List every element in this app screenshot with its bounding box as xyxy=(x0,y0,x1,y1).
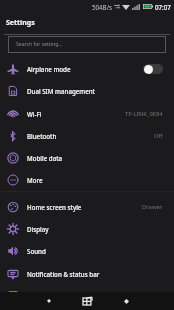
button[interactable]: Sound xyxy=(0,240,174,262)
staticText: Home screen style xyxy=(27,203,82,211)
staticText: Drawer xyxy=(142,203,163,211)
staticText: Search for setting... xyxy=(16,41,63,48)
button[interactable]: Airplane mode xyxy=(0,58,174,80)
button[interactable]: Home screen style xyxy=(0,196,174,218)
staticText: Dual SIM management xyxy=(27,87,95,95)
staticText: Airplane mode xyxy=(27,65,71,73)
staticText: Bluetooth xyxy=(27,132,57,140)
staticText: Sound xyxy=(27,247,46,255)
staticText: More xyxy=(27,176,43,184)
staticText: 504B/s xyxy=(92,3,112,11)
staticText: Mobile data xyxy=(27,154,63,162)
button[interactable]: Dual SIM management xyxy=(0,80,174,102)
button[interactable]: More xyxy=(0,169,174,191)
button[interactable]: Home xyxy=(107,292,145,310)
button[interactable]: Back xyxy=(29,292,68,310)
staticText: Notification & status bar xyxy=(27,270,100,278)
staticText: Lock screen xyxy=(27,292,62,300)
staticText: 07:07 xyxy=(155,3,171,11)
staticText: Display xyxy=(27,225,49,233)
staticText: Settings xyxy=(6,18,35,28)
button[interactable]: Notification & status bar xyxy=(0,263,174,285)
button[interactable]: Display xyxy=(0,218,174,240)
button[interactable]: Search for setting... xyxy=(8,36,166,53)
button[interactable]: Mobile data xyxy=(0,147,174,169)
staticText: Off xyxy=(154,132,163,140)
button[interactable]: Bluetooth xyxy=(0,125,174,147)
button[interactable]: Lock screen xyxy=(0,285,174,307)
button[interactable]: Wi-Fi xyxy=(0,103,174,125)
button[interactable]: Recent apps xyxy=(68,292,107,310)
staticText: Wi-Fi xyxy=(27,110,42,118)
staticText: TP-LINK_0E84 xyxy=(125,110,163,118)
